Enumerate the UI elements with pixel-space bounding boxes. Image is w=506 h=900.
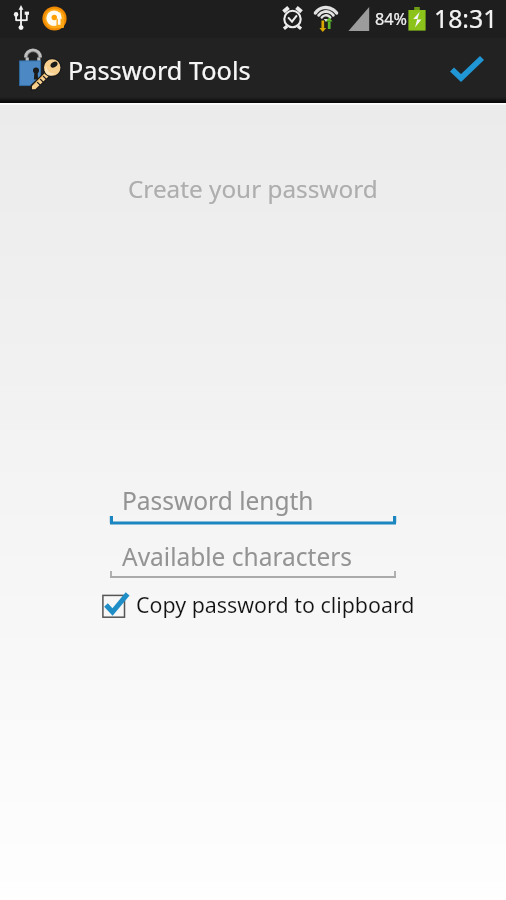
staticText: 18:31 bbox=[434, 1, 498, 35]
staticText: Create your password bbox=[128, 172, 378, 205]
staticText: Password Tools bbox=[68, 53, 251, 87]
button[interactable]: Available characters bbox=[108, 534, 398, 580]
button[interactable]: Password Tools bbox=[0, 38, 314, 103]
staticText: Available characters bbox=[122, 540, 353, 573]
staticText: 84% bbox=[375, 8, 407, 30]
button[interactable]: Copy password to clipboard bbox=[100, 590, 415, 620]
button[interactable]: Done bbox=[441, 38, 506, 103]
staticText: Copy password to clipboard bbox=[136, 590, 415, 619]
button[interactable]: Password length bbox=[108, 478, 398, 526]
staticText: Password length bbox=[122, 484, 314, 517]
